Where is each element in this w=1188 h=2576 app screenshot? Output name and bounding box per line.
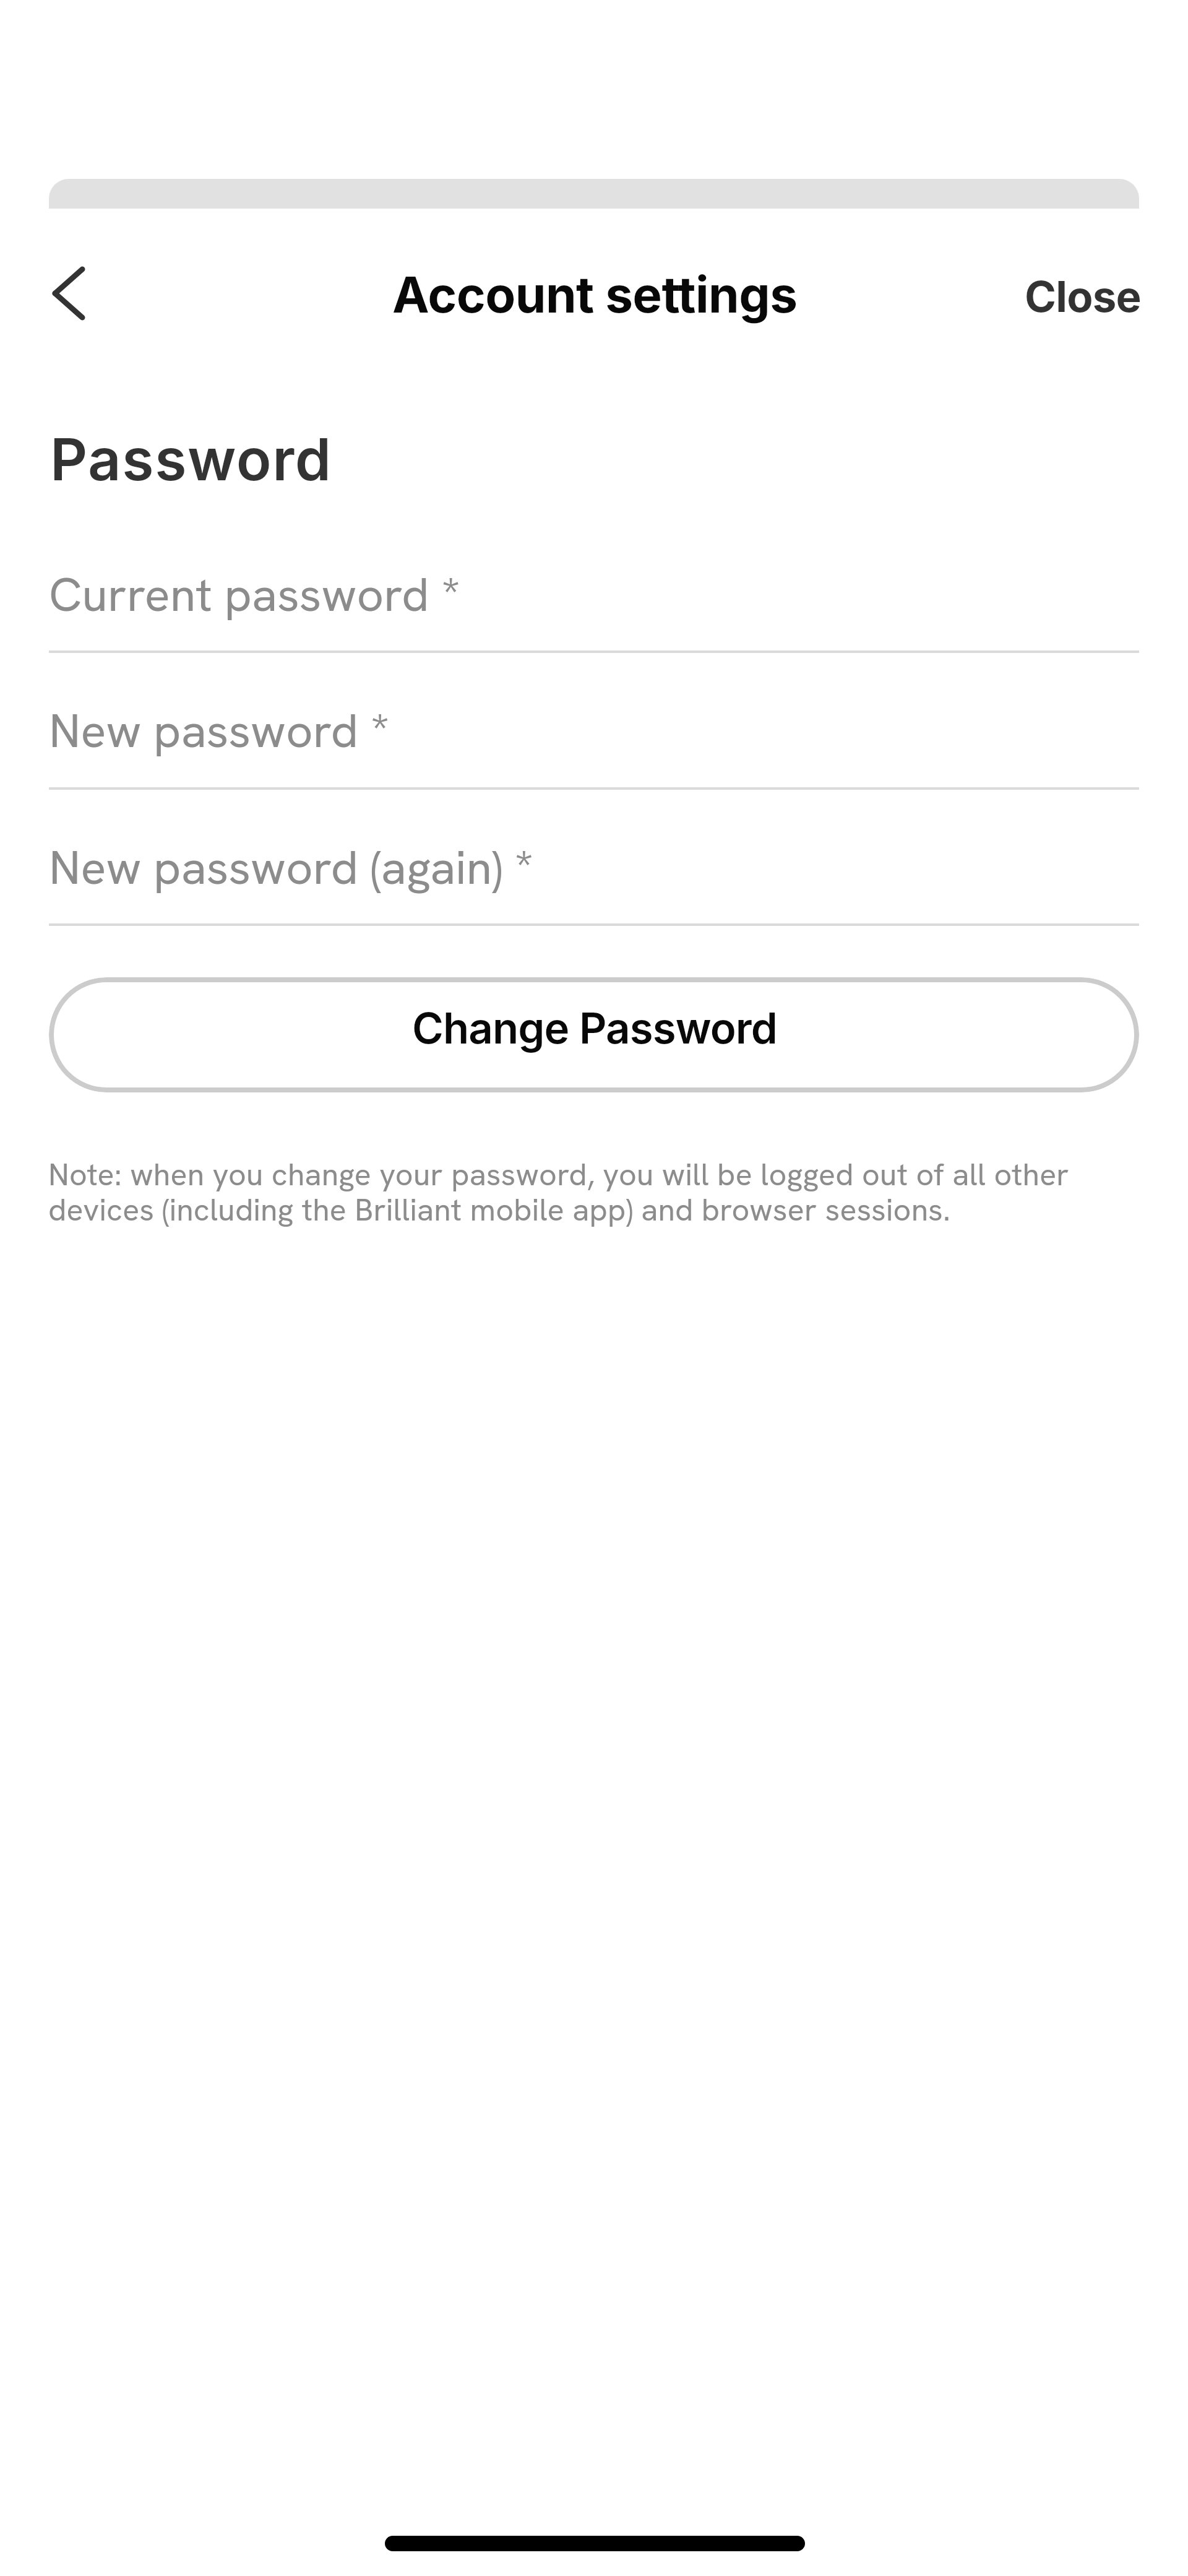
staticText: Password [50,424,332,494]
staticText: Change Password [412,1002,777,1053]
button[interactable]: New password * [49,668,1139,790]
staticText: Account settings [392,264,798,324]
staticText: Note: when you change your password, you… [48,1158,1094,1229]
staticText: Current password * [49,567,460,624]
button[interactable]: Back [15,250,121,337]
staticText: New password * [49,703,390,760]
button[interactable]: Close [996,250,1163,337]
button[interactable]: New password (again) * [49,805,1139,926]
staticText: Close [1025,270,1141,322]
button[interactable]: Current password * [49,532,1139,653]
staticText: New password (again) * [49,840,533,897]
button[interactable]: Change Password [49,977,1139,1092]
